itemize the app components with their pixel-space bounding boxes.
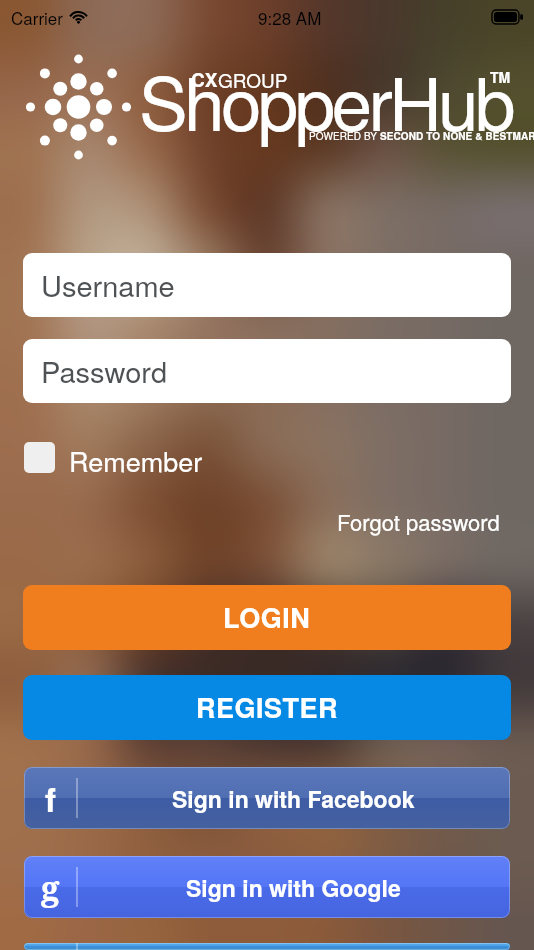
staticText: Carrier (11, 5, 63, 29)
button[interactable]: Remember (24, 441, 203, 473)
staticText: SECOND TO NONE & BESTMARK (380, 129, 534, 143)
staticText: Remember (69, 441, 203, 473)
staticText: CX (191, 66, 218, 93)
button[interactable]: LOGIN (23, 585, 511, 650)
button[interactable]: f (24, 767, 510, 829)
staticText: POWERED BY (309, 129, 380, 143)
staticText: t (45, 943, 56, 950)
staticText: 9:28 AM (258, 5, 322, 29)
staticText: GROUP (218, 66, 288, 93)
staticText: Username (41, 264, 175, 306)
button[interactable]: Password (23, 339, 511, 403)
button[interactable]: REGISTER (23, 675, 511, 740)
staticText: f (45, 775, 56, 822)
button[interactable]: t (24, 943, 510, 950)
staticText: LOGIN (223, 598, 311, 637)
staticText: REGISTER (196, 688, 338, 727)
button[interactable]: Forgot password (337, 506, 534, 538)
staticText: g (41, 865, 60, 910)
staticText: TM (490, 67, 511, 87)
button[interactable]: Username (23, 253, 511, 317)
button[interactable]: g (24, 856, 510, 918)
staticText: ShopperHub (139, 47, 512, 152)
staticText: Password (41, 350, 168, 392)
staticText: Sign in with Google (186, 871, 401, 904)
staticText: Sign in with Facebook (172, 782, 415, 815)
staticText: Sign in with Twitter (189, 943, 399, 950)
